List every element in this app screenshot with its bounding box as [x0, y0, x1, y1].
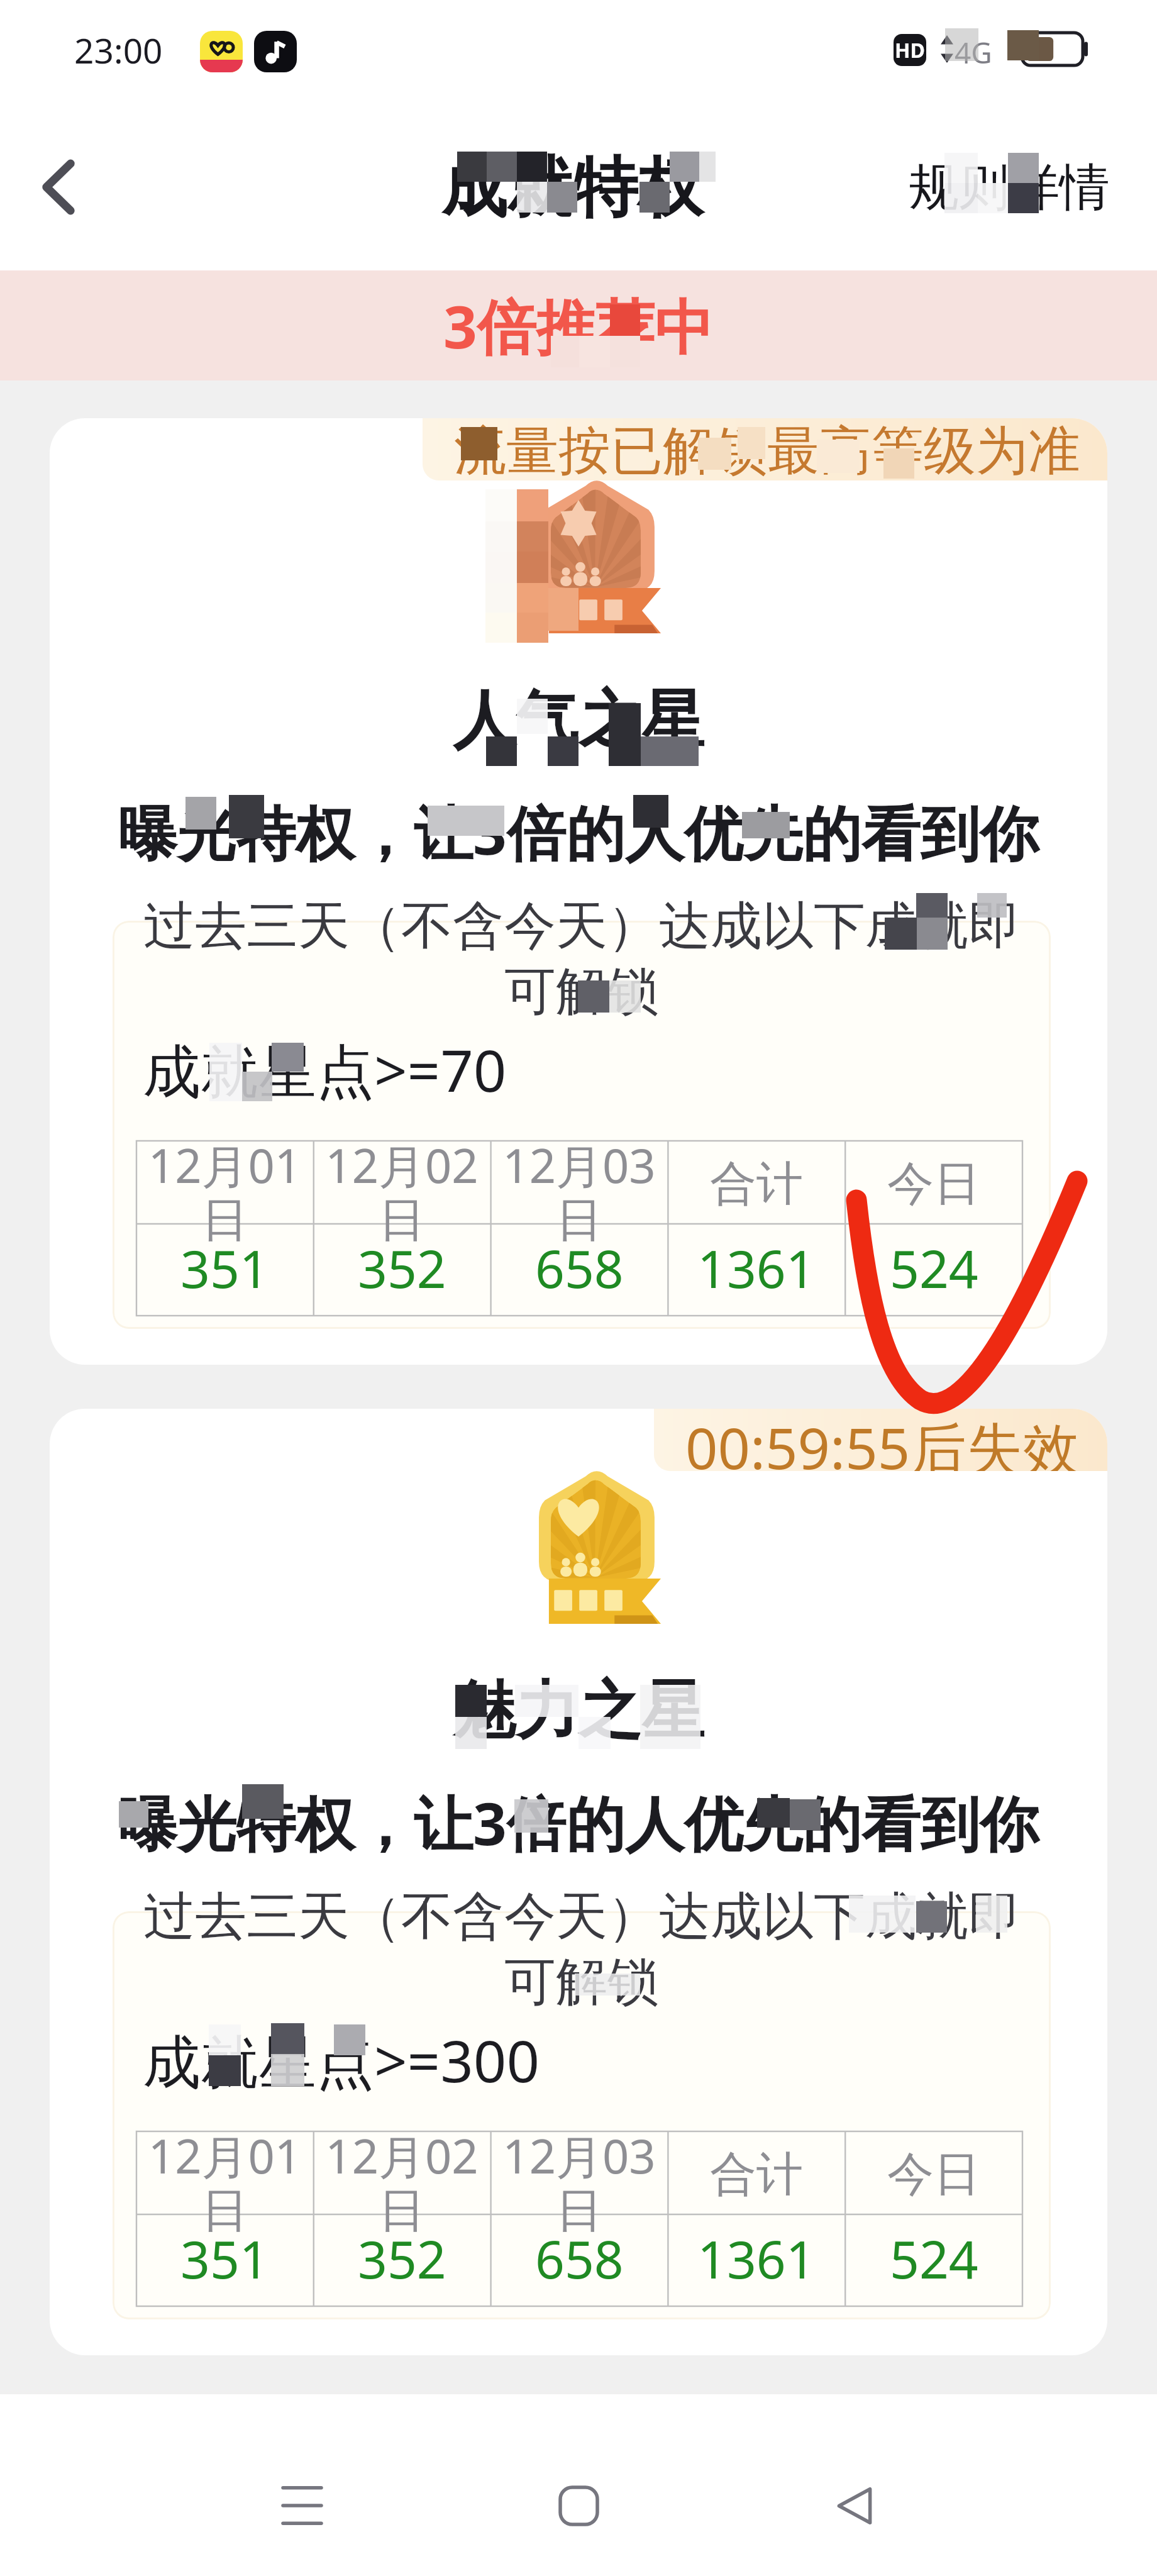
- staticText: 351: [180, 1233, 269, 1303]
- button[interactable]: 00:59:55后失效: [50, 1409, 1107, 2355]
- staticText: 人气之星: [50, 681, 1107, 760]
- staticText: 合计: [710, 2145, 803, 2204]
- staticText: 352: [358, 1233, 446, 1303]
- button[interactable]: 规则详情: [909, 156, 1110, 219]
- staticText: 12月02日: [313, 1133, 490, 1250]
- staticText: 今日: [887, 2145, 980, 2204]
- staticText: 1361: [697, 2223, 816, 2294]
- staticText: 4G: [955, 33, 992, 72]
- staticText: 过去三天（不含今天）达成以下成就即可解锁: [124, 894, 1039, 1024]
- staticText: 658: [535, 2223, 624, 2294]
- staticText: 12月01日: [136, 2124, 313, 2240]
- button[interactable]: Back: [11, 140, 106, 234]
- staticText: 351: [180, 2223, 269, 2294]
- staticText: 成就星点>=70: [143, 1030, 507, 1109]
- staticText: 流量按已解锁最高等级为准: [454, 418, 1080, 480]
- staticText: 524: [890, 1233, 978, 1303]
- button[interactable]: Recent apps: [252, 2455, 352, 2556]
- staticText: 12月02日: [313, 2124, 490, 2240]
- button[interactable]: Back: [804, 2455, 905, 2556]
- staticText: 1361: [697, 1233, 816, 1303]
- staticText: 规则详情: [909, 156, 1110, 219]
- staticText: 23:00: [74, 26, 163, 74]
- staticText: 352: [358, 2223, 446, 2294]
- staticText: 成就特权: [441, 147, 703, 230]
- staticText: 魅力之星: [50, 1672, 1107, 1751]
- button[interactable]: Home: [528, 2455, 629, 2556]
- staticText: 12月01日: [136, 1133, 313, 1250]
- staticText: 曝光特权，让3倍的人优先的看到你: [50, 792, 1107, 872]
- staticText: HD: [895, 36, 925, 64]
- staticText: 合计: [710, 1155, 803, 1213]
- staticText: 过去三天（不含今天）达成以下成就即可解锁: [124, 1884, 1039, 2014]
- button[interactable]: 流量按已解锁最高等级为准: [50, 418, 1107, 1365]
- staticText: 今日: [887, 1155, 980, 1213]
- staticText: 12月03日: [490, 1133, 668, 1250]
- staticText: 658: [535, 1233, 624, 1303]
- staticText: 12月03日: [490, 2124, 668, 2240]
- staticText: 00:59:55后失效: [685, 1409, 1080, 1471]
- staticText: 成就星点>=300: [143, 2021, 540, 2100]
- staticText: 曝光特权，让3倍的人优先的看到你: [50, 1782, 1107, 1863]
- staticText: 524: [890, 2223, 978, 2294]
- staticText: 3倍推荐中: [443, 286, 714, 366]
